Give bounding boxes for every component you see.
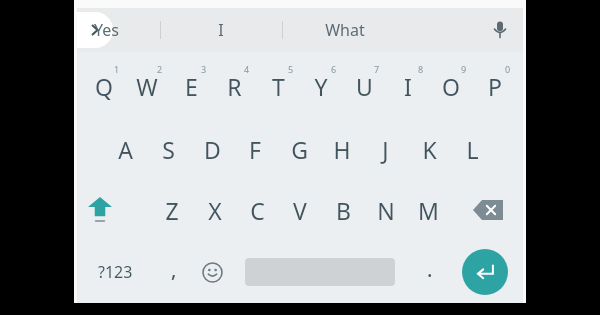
staticText: X <box>208 195 222 226</box>
button[interactable]: A <box>104 123 146 175</box>
staticText: 5 <box>288 63 294 75</box>
staticText: What <box>325 19 365 41</box>
button[interactable]: M <box>407 184 449 236</box>
staticText: H <box>333 134 351 165</box>
button[interactable]: E <box>170 60 212 112</box>
button[interactable]: H <box>321 123 363 175</box>
staticText: 9 <box>461 63 467 75</box>
staticText: Z <box>165 195 179 226</box>
button[interactable]: . <box>413 250 447 294</box>
button[interactable]: X <box>194 184 236 236</box>
staticText: ?123 <box>98 261 133 283</box>
button[interactable]: P <box>474 60 516 112</box>
staticText: 2 <box>157 63 163 75</box>
staticText: 8 <box>418 63 424 75</box>
button[interactable]: C <box>236 184 278 236</box>
button[interactable]: D <box>191 123 233 175</box>
staticText: U <box>356 71 373 102</box>
button[interactable]: Shift <box>79 188 121 232</box>
button[interactable]: K <box>408 123 450 175</box>
staticText: P <box>488 71 502 102</box>
button[interactable]: What <box>303 8 387 52</box>
button[interactable]: Emoji <box>193 250 231 294</box>
button[interactable]: U <box>343 60 385 112</box>
staticText: Y <box>314 71 328 102</box>
staticText: M <box>418 195 439 226</box>
staticText: I <box>404 71 412 102</box>
button[interactable]: Expand suggestions <box>77 12 113 48</box>
button[interactable]: N <box>365 184 407 236</box>
staticText: O <box>442 71 460 102</box>
staticText: L <box>466 134 479 165</box>
button[interactable]: B <box>322 184 364 236</box>
staticText: . <box>427 256 433 283</box>
staticText: Q <box>95 71 113 102</box>
button[interactable]: J <box>364 123 406 175</box>
staticText: A <box>118 134 133 165</box>
staticText: V <box>293 195 307 226</box>
button[interactable]: O <box>430 60 472 112</box>
button[interactable]: R <box>213 60 255 112</box>
button[interactable]: Q <box>83 60 125 112</box>
staticText: J <box>382 134 389 165</box>
button[interactable]: T <box>257 60 299 112</box>
button[interactable]: , <box>157 250 191 294</box>
button[interactable]: L <box>451 123 493 175</box>
button[interactable]: Y <box>300 60 342 112</box>
staticText: T <box>272 71 285 102</box>
staticText: 0 <box>505 63 511 75</box>
button[interactable]: I <box>387 60 429 112</box>
staticText: S <box>162 134 175 165</box>
button[interactable]: V <box>279 184 321 236</box>
button[interactable]: Enter <box>462 249 508 295</box>
staticText: 7 <box>374 63 380 75</box>
button[interactable]: Yes <box>64 8 148 52</box>
staticText: N <box>377 195 395 226</box>
staticText: , <box>171 256 177 283</box>
staticText: G <box>291 134 308 165</box>
staticText: B <box>336 195 351 226</box>
staticText: 1 <box>114 63 120 75</box>
button[interactable]: ?123 <box>87 250 143 294</box>
button[interactable]: I <box>179 8 263 52</box>
button[interactable]: Z <box>151 184 193 236</box>
button[interactable]: Backspace <box>465 188 511 232</box>
staticText: W <box>136 71 158 102</box>
staticText: D <box>204 134 221 165</box>
button[interactable]: Voice input <box>477 8 523 52</box>
button[interactable]: W <box>126 60 168 112</box>
button[interactable]: F <box>234 123 276 175</box>
staticText: E <box>185 71 198 102</box>
button[interactable]: S <box>147 123 189 175</box>
staticText: Yes <box>94 19 119 41</box>
button[interactable]: G <box>278 123 320 175</box>
staticText: C <box>250 195 265 226</box>
staticText: 4 <box>244 63 250 75</box>
staticText: I <box>218 19 224 41</box>
staticText: 3 <box>201 63 207 75</box>
staticText: K <box>422 134 437 165</box>
staticText: R <box>227 71 242 102</box>
staticText: F <box>249 134 261 165</box>
staticText: 6 <box>331 63 337 75</box>
